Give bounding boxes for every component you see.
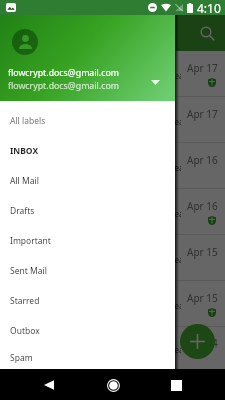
button[interactable]: Google [0,235,225,280]
staticText: All labels [10,115,46,127]
staticText: Encrypted message from FlowCrypt sender … [8,300,181,311]
staticText: Apr 15 [187,245,218,259]
button[interactable]: Switch account [145,72,165,92]
staticText: Sent Mail [10,265,47,277]
button[interactable]: Tom James [0,189,225,234]
staticText: INBOX [10,145,39,157]
staticText: Apr 17 [187,61,218,75]
staticText: flowcrypt.docs@gmail.com and more text h… [8,174,174,184]
staticText: Encrypted message from FlowCrypt sender … [8,116,181,127]
button[interactable]: Outbox [0,316,175,346]
staticText: flowcrypt.docs@gmail.com and more text h… [8,356,174,366]
staticText: Important [10,235,51,247]
button[interactable]: Important [0,226,175,256]
staticText: Apr 16 [187,199,218,213]
button[interactable]: Sent Mail [0,256,175,286]
button[interactable]: Denys [0,143,225,188]
button[interactable]: All Mail [0,166,175,196]
button[interactable]: Denys [0,327,225,369]
staticText: flowcrypt.docs@gmail.com [8,80,119,92]
staticText: Encrypted message from FlowCrypt sender … [8,70,181,81]
button[interactable]: FlowCrypt [0,97,225,142]
button[interactable]: Drafts [0,196,175,226]
staticText: Apr 15 [187,291,218,305]
staticText: All Mail [10,175,39,187]
button[interactable]: Search [194,20,220,46]
button[interactable]: Recent apps [162,371,190,399]
staticText: Encrypted message from FlowCrypt sender … [8,254,181,265]
staticText: Outbox [10,325,40,337]
button[interactable]: Starred [0,286,175,316]
button[interactable]: Compose new message [180,324,215,359]
button[interactable]: Open navigation drawer [5,20,31,46]
staticText: flowcrypt.docs@gmail.com and more text h… [8,82,174,92]
button[interactable]: Back [35,371,63,399]
staticText: Apr 17 [187,107,218,121]
staticText: Apr 16 [187,153,218,167]
staticText: Starred [10,295,40,307]
button[interactable]: Google [0,51,225,96]
staticText: 4:10 [197,0,221,15]
button[interactable]: All labels [0,106,175,136]
staticText: flowcrypt.docs@gmail.com [8,67,119,79]
staticText: Encrypted message from FlowCrypt sender … [8,344,181,355]
button[interactable]: Spam [0,346,175,369]
button[interactable]: INBOX [0,136,175,166]
staticText: Denys [8,148,35,160]
staticText: Drafts [10,205,35,217]
staticText: Ivan Pizhenko [8,286,69,298]
staticText: Denys [8,330,35,342]
staticText: Encrypted message from FlowCrypt sender … [8,208,181,219]
staticText: Apr 14 [187,336,218,350]
staticText: Spam [10,352,33,364]
staticText: Google [8,240,39,252]
button[interactable]: Home [99,371,127,399]
staticText: flowcrypt.docs@gmail.com and more text h… [8,266,174,276]
staticText: Encrypted message from FlowCrypt sender … [8,162,181,173]
button[interactable]: Ivan Pizhenko [0,281,225,326]
